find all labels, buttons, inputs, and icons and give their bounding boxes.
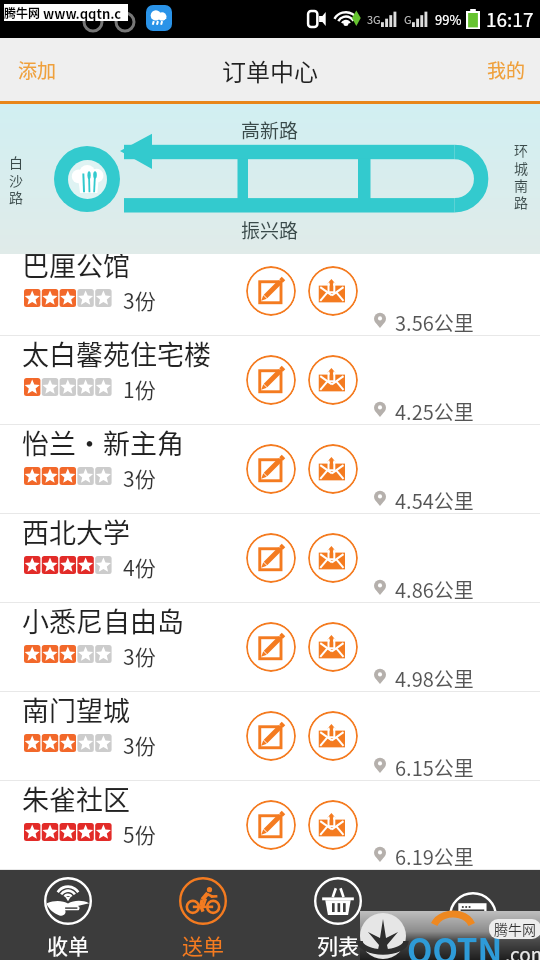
- button[interactable]: 更多: [405, 885, 540, 945]
- button[interactable]: 编辑订单: [246, 266, 296, 316]
- staticText: 5份: [123, 819, 156, 849]
- button[interactable]: 我的: [469, 40, 540, 100]
- staticText: 巴厘公馆: [22, 254, 130, 284]
- button[interactable]: 巴厘公馆: [0, 254, 540, 336]
- staticText: 送单: [182, 930, 224, 960]
- button[interactable]: 南门望城: [0, 692, 540, 781]
- button[interactable]: 收单: [0, 870, 135, 960]
- staticText: 白 沙 路: [9, 152, 23, 207]
- staticText: 16:17: [486, 5, 534, 33]
- button[interactable]: 太白馨苑住宅楼: [0, 336, 540, 425]
- button[interactable]: 发送订单: [308, 444, 358, 494]
- button[interactable]: 添加: [0, 40, 75, 100]
- staticText: 3.56公里: [395, 308, 474, 337]
- staticText: 列表: [317, 930, 359, 960]
- button[interactable]: 编辑订单: [246, 355, 296, 405]
- staticText: .com: [505, 940, 540, 960]
- staticText: QQTN: [407, 925, 503, 960]
- staticText: 我的: [487, 56, 526, 84]
- staticText: G: [404, 11, 412, 27]
- staticText: 3G: [367, 11, 381, 27]
- staticText: 3份: [123, 463, 156, 493]
- staticText: 收单: [47, 930, 89, 960]
- staticText: 99%: [435, 10, 462, 29]
- button[interactable]: 送单: [135, 870, 270, 960]
- button[interactable]: 编辑订单: [246, 711, 296, 761]
- staticText: 腾牛网: [4, 4, 43, 21]
- staticText: 3份: [123, 641, 156, 671]
- staticText: 南门望城: [22, 690, 130, 729]
- button[interactable]: 发送订单: [308, 355, 358, 405]
- button[interactable]: 朱雀社区: [0, 781, 540, 870]
- staticText: 4份: [123, 552, 156, 582]
- button[interactable]: 编辑订单: [246, 533, 296, 583]
- button[interactable]: 发送订单: [308, 533, 358, 583]
- staticText: 6.19公里: [395, 842, 474, 870]
- staticText: 4.86公里: [395, 575, 474, 604]
- button[interactable]: 编辑订单: [246, 444, 296, 494]
- button[interactable]: 发送订单: [308, 800, 358, 850]
- button[interactable]: 列表: [270, 870, 405, 960]
- button[interactable]: 小悉尼自由岛: [0, 603, 540, 692]
- staticText: 4.25公里: [395, 397, 474, 426]
- staticText: 振兴路: [241, 216, 299, 244]
- staticText: 3份: [123, 285, 156, 315]
- button[interactable]: 发送订单: [308, 711, 358, 761]
- button[interactable]: 怡兰·新主角: [0, 425, 540, 514]
- button[interactable]: 编辑订单: [246, 622, 296, 672]
- button[interactable]: 发送订单: [308, 622, 358, 672]
- staticText: 1份: [123, 374, 156, 404]
- staticText: 小悉尼自由岛: [22, 601, 184, 640]
- staticText: 朱雀社区: [22, 779, 130, 818]
- staticText: www.qqtn.com: [43, 4, 128, 21]
- staticText: 添加: [18, 56, 57, 84]
- staticText: 环 城 南 路: [514, 140, 528, 212]
- staticText: 4.98公里: [395, 664, 474, 693]
- button[interactable]: 发送订单: [308, 266, 358, 316]
- staticText: 6.15公里: [395, 753, 474, 782]
- staticText: 腾牛网: [494, 919, 536, 939]
- staticText: 西北大学: [22, 512, 130, 551]
- staticText: 3份: [123, 730, 156, 760]
- staticText: 怡兰·新主角: [22, 423, 184, 462]
- button[interactable]: 编辑订单: [246, 800, 296, 850]
- button[interactable]: 西北大学: [0, 514, 540, 603]
- staticText: 高新路: [241, 116, 299, 144]
- staticText: 太白馨苑住宅楼: [22, 334, 211, 373]
- staticText: 订单中心: [222, 53, 318, 88]
- staticText: 4.54公里: [395, 486, 474, 515]
